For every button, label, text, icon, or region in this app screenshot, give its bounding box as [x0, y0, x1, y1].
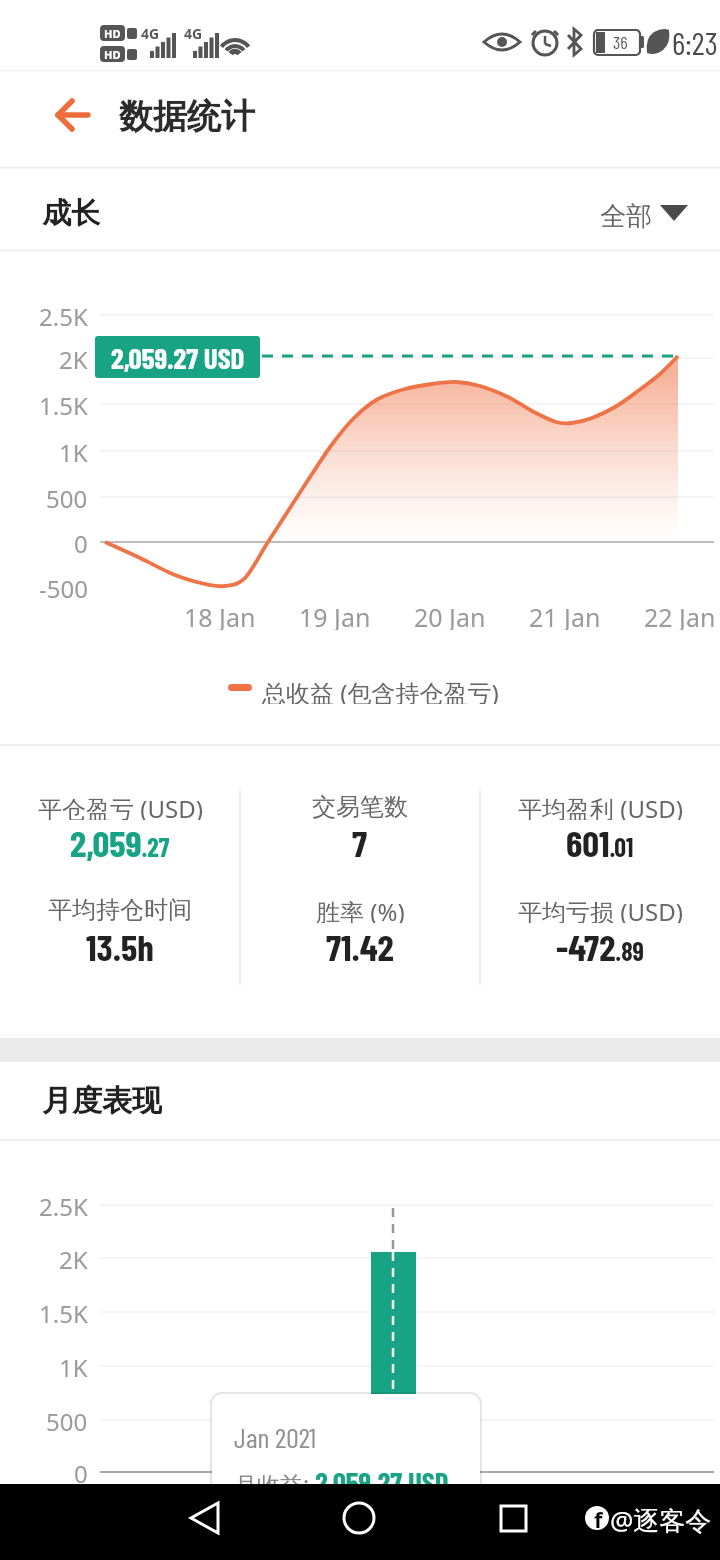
staticText: 19 Jan [299, 600, 371, 630]
staticText: 18 Jan [184, 600, 256, 630]
staticText: 平均盈利 (USD) [518, 792, 683, 820]
button[interactable] [40, 90, 100, 140]
staticText: 71.42 [326, 924, 394, 968]
staticText: 4G [184, 24, 203, 42]
staticText: 0 [74, 1457, 88, 1487]
staticText: 2,059.27 USD [111, 340, 245, 375]
staticText: 6:23 [672, 23, 718, 61]
button[interactable]: Jan 2021 [212, 1394, 480, 1558]
staticText: 数据统计 [119, 95, 255, 138]
staticText: 全部 [600, 200, 652, 233]
staticText: 0 [74, 527, 88, 557]
staticText: @逐客令 [610, 1502, 712, 1534]
staticText: 2.5K [39, 1190, 88, 1220]
staticText: 2K [59, 343, 88, 373]
staticText: HD [104, 47, 121, 62]
button[interactable] [320, 1489, 400, 1549]
staticText: 1.5K [39, 389, 88, 419]
staticText: 21 Jan [529, 600, 601, 630]
button[interactable] [165, 1489, 255, 1549]
staticText: 13.5h [86, 924, 154, 968]
staticText: 1.5K [39, 1297, 88, 1327]
staticText: 平均亏损 (USD) [518, 895, 683, 923]
staticText: 1K [59, 436, 88, 466]
staticText: 交易笔数 [312, 792, 408, 820]
staticText: 36 [613, 31, 628, 53]
staticText: HD [104, 26, 121, 41]
staticText: 7 [352, 820, 368, 864]
button[interactable]: 2,059.27 USD [95, 336, 260, 378]
staticText: 2.5K [39, 300, 88, 330]
staticText: 2K [59, 1243, 88, 1273]
staticText: 月收益: 2,059.27 USD [234, 1464, 449, 1498]
staticText: 2,059.27 [70, 820, 170, 864]
staticText: 22 Jan [644, 600, 716, 630]
staticText: f [594, 1504, 603, 1532]
staticText: -472.89 [556, 924, 644, 968]
button[interactable]: 全部 [580, 190, 700, 236]
staticText: 平仓盈亏 (USD) [38, 792, 203, 820]
staticText: 601.01 [566, 820, 634, 864]
staticText: 4G [141, 24, 160, 42]
staticText: -500 [39, 572, 88, 602]
staticText: 500 [46, 1405, 88, 1435]
staticText: 20 Jan [414, 600, 486, 630]
button[interactable] [475, 1489, 555, 1549]
staticText: 成长 [42, 195, 100, 231]
staticText: 月度表现 [42, 1082, 162, 1118]
staticText: 1K [59, 1351, 88, 1381]
staticText: 平均持仓时间 [48, 895, 192, 923]
staticText: 总收益 (包含持仓盈亏) [262, 676, 499, 704]
staticText: Jan 2021 [234, 1420, 317, 1454]
staticText: 500 [46, 482, 88, 512]
staticText: 胜率 (%) [316, 895, 405, 923]
